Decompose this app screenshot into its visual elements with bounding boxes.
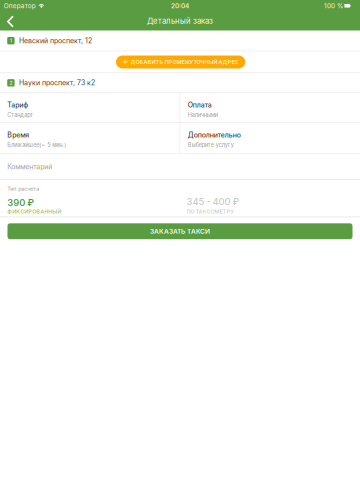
staticText: Комментарий (7, 163, 52, 171)
staticText: Выберите услугу (188, 141, 234, 148)
staticText: Тип расчета (7, 185, 39, 192)
staticText: Тариф (7, 101, 28, 109)
staticText: Ближайшее(~ 5 мин.) (7, 141, 66, 148)
button[interactable]: 2 (0, 73, 360, 92)
button[interactable]: Время (0, 123, 180, 153)
staticText: Стандарт (7, 111, 33, 118)
staticText: Наличными (188, 111, 218, 118)
staticText: 345 - 400 ₽ (186, 196, 239, 207)
button[interactable]: Дополнительно (180, 123, 360, 153)
button[interactable]: Комментарий (0, 154, 360, 179)
button[interactable]: ЗАКАЗАТЬ ТАКСИ (7, 223, 352, 239)
staticText: Оператор (4, 2, 36, 10)
staticText: ДОБАВИТЬ ПРОМЕЖУТОЧНЫЙ АДРЕС (131, 59, 239, 65)
staticText: 20:04 (171, 2, 189, 10)
staticText: 390 ₽ (7, 197, 34, 208)
staticText: 1 (10, 38, 12, 44)
button[interactable]: 345 - 400 ₽ (180, 180, 360, 216)
staticText: Невский проспект, 12 (19, 36, 92, 45)
staticText: Оплата (188, 101, 212, 109)
staticText: Детальный заказ (147, 16, 213, 26)
button[interactable]: Тариф (0, 93, 180, 122)
staticText: 100 % (324, 2, 343, 10)
button[interactable]: 1 (0, 31, 360, 51)
staticText: ФИКСИРОВАННЫЙ (7, 208, 61, 215)
button[interactable]: Оплата (180, 93, 360, 122)
staticText: Время (7, 131, 29, 139)
button[interactable]: ДОБАВИТЬ ПРОМЕЖУТОЧНЫЙ АДРЕС (116, 55, 245, 68)
staticText: Науки проспект, 73 к2 (19, 79, 95, 87)
staticText: Дополнительно (188, 131, 241, 139)
staticText: ПО ТАКСОМЕТРУ (186, 208, 234, 215)
staticText: 2 (9, 80, 12, 86)
staticText: ЗАКАЗАТЬ ТАКСИ (150, 227, 210, 235)
button[interactable]: Тип расчета (0, 180, 180, 216)
button[interactable]: Back (1, 11, 18, 30)
